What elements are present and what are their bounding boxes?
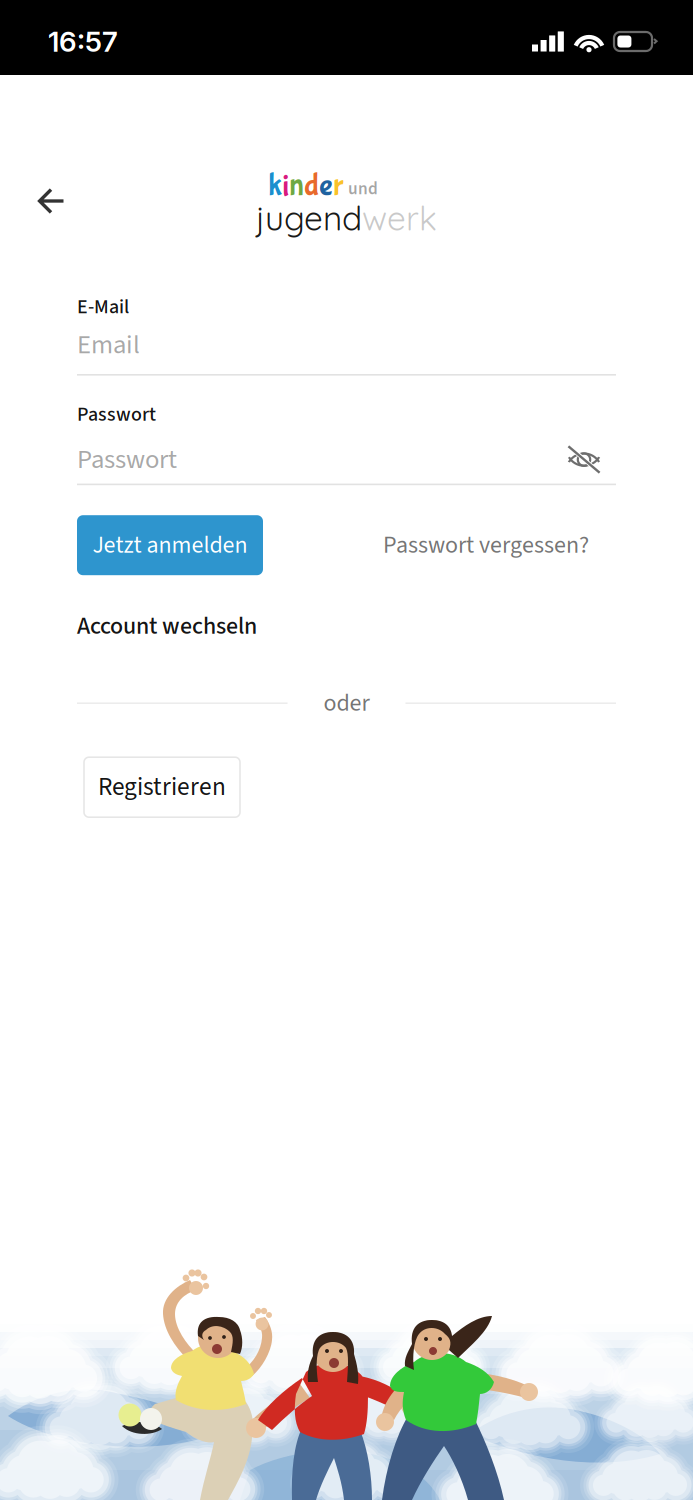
staticText: k (268, 167, 282, 204)
staticText: jugend (256, 197, 362, 239)
staticText: Email (77, 326, 140, 364)
staticText: E-Mail (77, 293, 129, 321)
staticText: 16:57 (48, 25, 118, 58)
staticText: oder (323, 686, 369, 720)
button[interactable]: Show password (567, 446, 601, 473)
button[interactable]: Passwort vergessen? (383, 515, 616, 575)
staticText: Jetzt anmelden (92, 528, 247, 562)
staticText: Registrieren (98, 769, 226, 805)
staticText: werk (362, 197, 437, 239)
staticText: r (333, 167, 343, 204)
staticText: e (319, 167, 333, 204)
button[interactable]: Jetzt anmelden (77, 515, 263, 575)
button[interactable]: Registrieren (84, 757, 240, 817)
staticText: n (289, 167, 304, 204)
staticText: Passwort (77, 400, 156, 429)
staticText: Passwort (77, 441, 177, 479)
staticText: und (348, 177, 378, 201)
staticText: d (304, 167, 319, 204)
staticText: i (282, 167, 289, 204)
staticText: Account wechseln (77, 609, 257, 643)
button[interactable]: Account wechseln (77, 613, 257, 639)
staticText: Passwort vergessen? (383, 528, 589, 562)
button[interactable]: Back (18, 168, 85, 234)
